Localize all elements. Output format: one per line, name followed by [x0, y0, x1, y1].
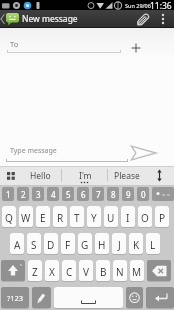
button[interactable] — [146, 287, 174, 309]
staticText: W — [21, 211, 31, 225]
button[interactable]: A — [10, 233, 24, 255]
button[interactable]: To — [0, 28, 174, 56]
button[interactable] — [32, 287, 51, 309]
button[interactable]: W — [19, 206, 33, 228]
button[interactable]: F — [61, 233, 75, 255]
button[interactable] — [126, 287, 143, 309]
staticText: I — [126, 211, 130, 225]
staticText: ?123 — [7, 293, 24, 303]
button[interactable]: 4 — [47, 187, 59, 201]
button[interactable]: 1 — [2, 187, 14, 201]
button[interactable]: 0 — [137, 187, 149, 201]
button[interactable]: 6 — [77, 187, 89, 201]
staticText: 11:36 — [150, 0, 172, 10]
button[interactable]: N — [113, 260, 127, 282]
staticText: 8 — [111, 189, 116, 200]
staticText: O — [141, 211, 149, 225]
button[interactable]: K — [129, 233, 143, 255]
staticText: Z — [32, 265, 38, 279]
button[interactable]: M — [130, 260, 144, 282]
staticText: B — [100, 265, 107, 279]
staticText: G — [81, 238, 89, 252]
button[interactable] — [147, 260, 171, 282]
staticText: To — [10, 39, 19, 49]
staticText: F — [65, 238, 71, 252]
button[interactable]: C — [62, 260, 76, 282]
staticText: M — [132, 265, 142, 279]
staticText: 6 — [81, 189, 86, 200]
button[interactable] — [54, 287, 123, 309]
button[interactable]: 8 — [107, 187, 119, 201]
staticText: V — [83, 265, 89, 279]
button[interactable]: I'm — [79, 170, 92, 182]
staticText: 3 — [36, 189, 41, 200]
staticText: H — [98, 238, 106, 252]
button[interactable]: D — [44, 233, 58, 255]
staticText: 4 — [51, 189, 56, 200]
staticText: 0 — [141, 189, 146, 200]
button[interactable]: S — [27, 233, 41, 255]
button[interactable]: Y — [87, 206, 101, 228]
button[interactable]: X — [45, 260, 59, 282]
staticText: E — [40, 211, 46, 225]
button[interactable] — [1, 260, 25, 282]
button[interactable] — [136, 12, 150, 27]
staticText: Sun 29/06 — [125, 2, 151, 9]
staticText: K — [133, 238, 140, 252]
staticText: 1 — [6, 189, 11, 200]
staticText: 7 — [96, 189, 101, 200]
button[interactable] — [5, 12, 20, 26]
button[interactable]: V — [79, 260, 93, 282]
button[interactable]: O — [138, 206, 152, 228]
staticText: J — [118, 238, 121, 252]
button[interactable]: I — [121, 206, 135, 228]
button[interactable]: 7 — [92, 187, 104, 201]
button[interactable]: ?123 — [1, 287, 29, 309]
staticText: S — [31, 238, 37, 252]
button[interactable]: E — [36, 206, 50, 228]
button[interactable]: L — [146, 233, 160, 255]
staticText: P — [159, 211, 166, 225]
staticText: L — [150, 238, 156, 252]
staticText: 5 — [66, 189, 71, 200]
staticText: R — [57, 211, 64, 225]
staticText: D — [47, 238, 55, 252]
staticText: T — [74, 211, 80, 225]
staticText: X — [49, 265, 55, 279]
staticText: Type message — [10, 146, 57, 156]
staticText: New message — [22, 13, 78, 25]
button[interactable]: H — [95, 233, 109, 255]
button[interactable]: Q — [2, 206, 16, 228]
button[interactable]: 2 — [17, 187, 29, 201]
button[interactable]: Z — [28, 260, 42, 282]
button[interactable]: 5 — [62, 187, 74, 201]
staticText: Q — [5, 211, 13, 225]
button[interactable]: G — [78, 233, 92, 255]
button[interactable]: Hello — [30, 170, 51, 182]
button[interactable]: U — [104, 206, 118, 228]
button[interactable]: 3 — [32, 187, 44, 201]
staticText: U — [107, 211, 115, 225]
button[interactable]: T — [70, 206, 84, 228]
staticText: 9 — [126, 189, 131, 200]
button[interactable]: Please — [114, 170, 140, 182]
button[interactable]: P — [155, 206, 169, 228]
button[interactable] — [152, 187, 174, 201]
button[interactable]: R — [53, 206, 67, 228]
staticText: N — [116, 265, 124, 279]
button[interactable]: Type message — [0, 142, 174, 166]
button[interactable]: 9 — [122, 187, 134, 201]
button[interactable]: B — [96, 260, 110, 282]
staticText: 2 — [21, 189, 26, 200]
staticText: Y — [91, 211, 97, 225]
button[interactable] — [161, 12, 165, 26]
button[interactable]: J — [112, 233, 126, 255]
staticText: C — [66, 265, 73, 279]
staticText: A — [14, 238, 21, 252]
